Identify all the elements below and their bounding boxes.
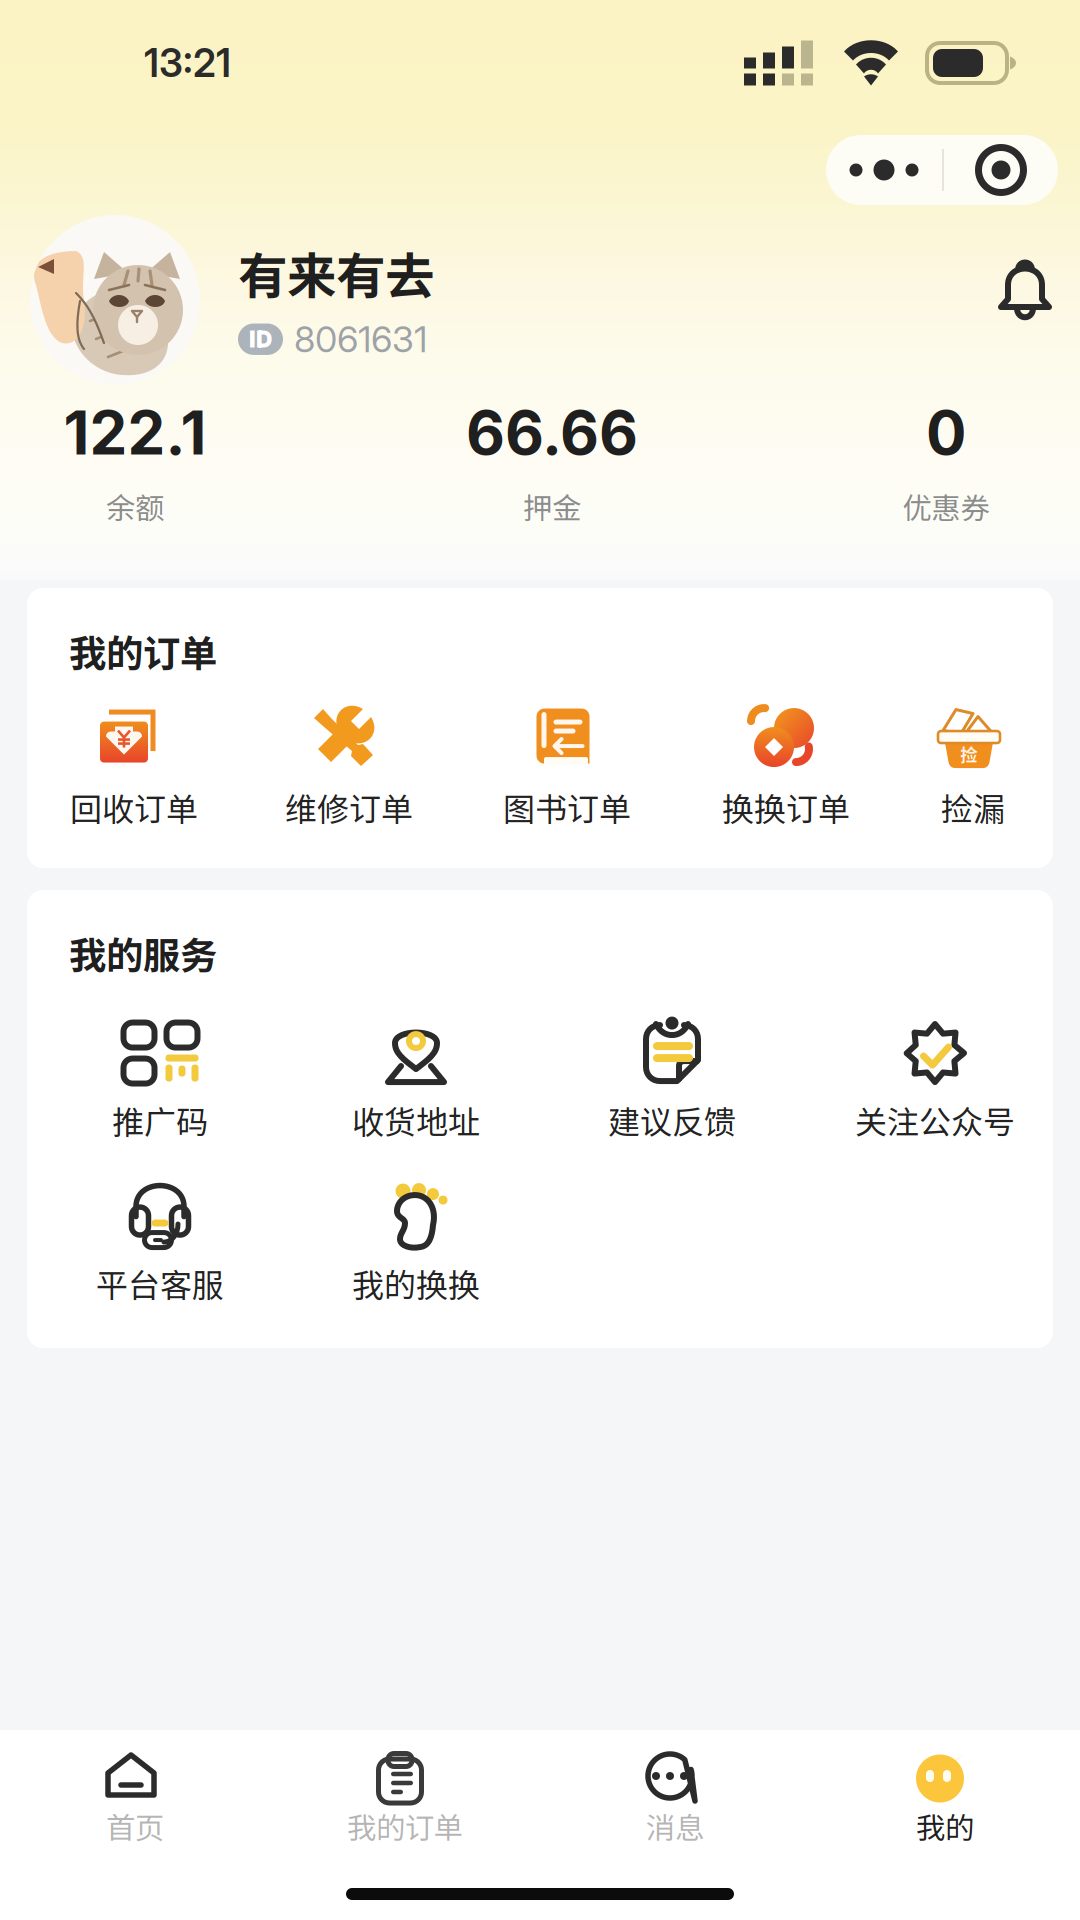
staticText: 我的订单 xyxy=(69,624,217,678)
staticText: 回收订单 xyxy=(70,784,198,830)
button[interactable]: 换换订单 xyxy=(716,707,856,833)
staticText: 押金 xyxy=(523,485,581,528)
staticText: 66.66 xyxy=(466,396,638,469)
staticText: 首页 xyxy=(106,1805,164,1847)
button[interactable]: 维修订单 xyxy=(279,707,419,833)
staticText: 我的换换 xyxy=(352,1260,480,1306)
button[interactable]: 推广码 xyxy=(60,1020,260,1146)
staticText: 13:21 xyxy=(144,40,231,86)
button[interactable]: 我的换换 xyxy=(316,1183,516,1309)
staticText: 捡漏 xyxy=(941,784,1005,830)
button[interactable]: 122.1 xyxy=(0,397,270,527)
staticText: 收货地址 xyxy=(352,1097,480,1143)
staticText: 优惠券 xyxy=(902,485,989,528)
button[interactable]: 我的订单 xyxy=(270,1752,540,1852)
button[interactable]: 首页 xyxy=(0,1752,270,1852)
staticText: 我的 xyxy=(916,1805,974,1847)
staticText: ID xyxy=(249,325,272,353)
staticText: 有来有去 xyxy=(238,237,434,308)
staticText: 关注公众号 xyxy=(855,1097,1015,1143)
staticText: 8061631 xyxy=(294,317,427,361)
button[interactable]: 图书订单 xyxy=(497,707,637,833)
button[interactable]: 消息 xyxy=(540,1752,810,1852)
button[interactable]: 我的 xyxy=(810,1752,1080,1852)
button[interactable]: Notifications xyxy=(997,259,1053,321)
button[interactable]: 关注公众号 xyxy=(835,1020,1035,1146)
staticText: 我的订单 xyxy=(347,1805,463,1847)
button[interactable]: 回收订单 xyxy=(64,707,204,833)
staticText: 消息 xyxy=(646,1805,704,1847)
button[interactable]: 0 xyxy=(811,397,1080,527)
button[interactable]: 平台客服 xyxy=(60,1183,260,1309)
staticText: 捡 xyxy=(960,741,977,767)
staticText: 推广码 xyxy=(112,1097,208,1143)
staticText: 平台客服 xyxy=(96,1260,224,1306)
button[interactable]: 收货地址 xyxy=(316,1020,516,1146)
button[interactable]: 捡 xyxy=(903,707,1043,833)
staticText: 0 xyxy=(926,396,966,469)
button[interactable]: 建议反馈 xyxy=(572,1020,772,1146)
button[interactable]: Close mini program xyxy=(944,135,1058,205)
button[interactable]: Profile photo xyxy=(30,215,200,385)
staticText: 建议反馈 xyxy=(608,1097,736,1143)
staticText: 图书订单 xyxy=(503,784,631,830)
staticText: 余额 xyxy=(106,485,164,528)
button[interactable]: More xyxy=(826,135,942,205)
staticText: 我的服务 xyxy=(69,926,217,980)
button[interactable]: 66.66 xyxy=(417,397,687,527)
button[interactable]: 有来有去 xyxy=(238,237,658,347)
staticText: 换换订单 xyxy=(722,784,850,830)
staticText: 122.1 xyxy=(63,396,206,469)
staticText: 维修订单 xyxy=(285,784,413,830)
